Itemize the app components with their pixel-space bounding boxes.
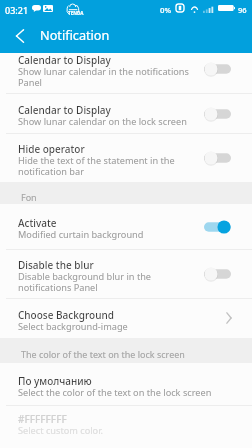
staticText: 03:21 [5,4,29,16]
staticText: Show lunar calendar in the notifications… [18,66,198,88]
button[interactable]: Calendar to Display [0,94,252,133]
button[interactable]: Switch off [204,62,231,76]
button[interactable]: Choose Background [0,299,252,338]
staticText: Modified curtain background [18,229,144,240]
staticText: 96 [238,5,247,15]
staticText: Hide the text of the statement in the no… [18,155,198,177]
staticText: Select custom color. [18,425,103,436]
staticText: Disable background blur in the notificat… [18,271,198,293]
staticText: Fon [21,192,37,203]
staticText: Calendar to Display [18,105,111,117]
button[interactable]: #FFFFFFFF [0,406,252,439]
staticText: Disable the blur [18,260,94,272]
staticText: Notification [40,26,110,43]
button[interactable]: Switch off [204,107,231,121]
staticText: Choose Background [18,310,114,322]
button[interactable]: Hide operator [0,134,252,182]
staticText: 0% [160,5,172,16]
button[interactable]: Calendar to Display [0,53,252,93]
staticText: Show lunar calendar on the lock screen [18,116,187,127]
staticText: Activate [18,218,57,230]
button[interactable]: По умолчанию [0,363,252,405]
staticText: Select background-image [18,321,128,332]
staticText: #FFFFFFFF [18,414,67,426]
staticText: Select the color of the text on the lock… [18,387,212,398]
button[interactable]: Activate [0,204,252,249]
staticText: Hide operator [18,144,85,156]
button[interactable]: Disable the blur [0,250,252,298]
staticText: The color of the text on the lock screen [21,349,185,360]
button[interactable]: Back [0,19,40,53]
staticText: TENDA [68,10,84,16]
button[interactable]: Switch off [204,151,231,165]
other: Choose background [223,311,235,325]
staticText: По умолчанию [18,376,92,388]
button[interactable]: Switch on [204,220,231,234]
staticText: Calendar to Display [18,55,111,67]
button[interactable]: Switch off [204,267,231,281]
